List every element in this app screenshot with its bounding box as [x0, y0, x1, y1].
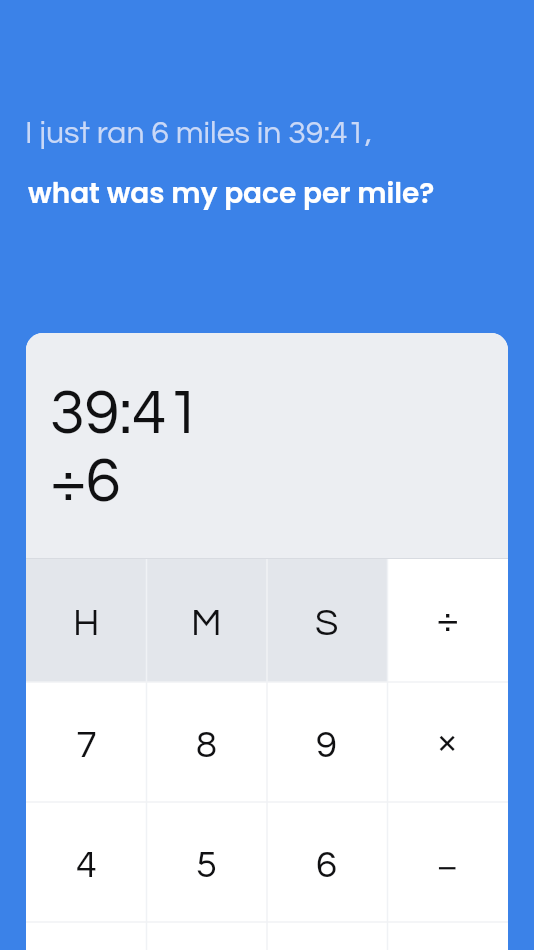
button[interactable]: 4	[26, 802, 146, 922]
staticText: M	[191, 604, 222, 643]
button[interactable]: 6	[266, 802, 387, 922]
staticText: 5	[196, 846, 217, 885]
staticText: ÷6	[51, 449, 121, 514]
staticText: H	[73, 604, 100, 643]
staticText: 9	[316, 726, 337, 765]
button[interactable]: 8	[146, 682, 266, 802]
staticText: what was my pace per mile?	[28, 174, 435, 213]
button[interactable]: M	[146, 558, 266, 682]
staticText: ÷	[437, 600, 459, 640]
staticText: 6	[316, 846, 337, 885]
button[interactable]: 9	[266, 682, 387, 802]
button[interactable]: −	[387, 802, 508, 922]
staticText: −	[437, 847, 458, 885]
staticText: ×	[437, 723, 458, 761]
staticText: S	[315, 604, 339, 643]
staticText: 39:41	[50, 381, 202, 446]
staticText: 7	[76, 726, 97, 765]
button[interactable]: S	[266, 558, 387, 682]
button[interactable]: 5	[146, 802, 266, 922]
button[interactable]: ÷	[387, 558, 508, 682]
staticText: I just ran 6 miles in 39:41,	[25, 117, 373, 150]
button[interactable]: 7	[26, 682, 146, 802]
staticText: 8	[196, 726, 217, 765]
staticText: 4	[76, 846, 97, 885]
button[interactable]: ×	[387, 682, 508, 802]
button[interactable]: H	[26, 558, 146, 682]
